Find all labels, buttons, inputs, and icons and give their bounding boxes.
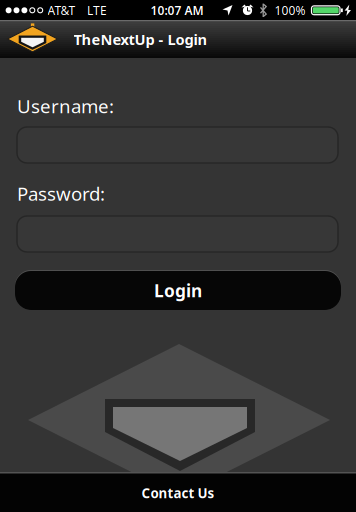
staticText: Login — [154, 279, 202, 302]
button[interactable]: Login — [15, 270, 341, 310]
staticText: TheNextUp - Login — [73, 29, 207, 49]
staticText: Password: — [17, 181, 105, 206]
button[interactable]: Password — [17, 216, 338, 252]
staticText: 100% — [274, 2, 305, 18]
button[interactable]: Username — [17, 127, 338, 163]
button[interactable]: Contact Us — [0, 472, 356, 512]
staticText: 10:07 AM — [150, 2, 203, 18]
staticText: Contact Us — [141, 484, 214, 502]
staticText: Username: — [17, 94, 114, 118]
staticText: LTE — [87, 2, 107, 18]
staticText: AT&T — [47, 2, 75, 18]
